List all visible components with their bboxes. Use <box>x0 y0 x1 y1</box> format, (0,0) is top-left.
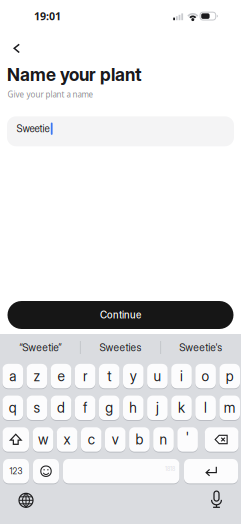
button[interactable]: Sweetie's <box>162 335 240 359</box>
button[interactable]: Dictation <box>203 487 229 513</box>
staticText: s <box>33 399 40 416</box>
button[interactable]: u <box>147 363 168 389</box>
button[interactable]: n <box>153 427 174 452</box>
button[interactable]: a <box>2 363 23 389</box>
staticText: o <box>202 368 210 384</box>
button[interactable]: s <box>27 395 47 420</box>
staticText: f <box>83 399 87 416</box>
button[interactable]: k <box>171 395 192 420</box>
button[interactable]: Continue <box>7 301 233 329</box>
staticText: j <box>156 399 159 416</box>
staticText: 1818 <box>165 466 175 472</box>
staticText: v <box>112 431 119 448</box>
staticText: g <box>105 399 113 416</box>
staticText: Name your plant <box>7 64 142 85</box>
button[interactable]: Shift <box>2 427 29 452</box>
staticText: y <box>130 368 137 384</box>
button[interactable]: t <box>99 363 119 389</box>
staticText: 123 <box>9 466 22 476</box>
button[interactable]: f <box>75 395 95 420</box>
staticText: b <box>135 431 143 448</box>
button[interactable]: e <box>51 363 71 389</box>
button[interactable]: v <box>105 427 126 452</box>
staticText: ' <box>186 429 190 446</box>
staticText: Give your plant a name <box>7 89 93 100</box>
button[interactable]: o <box>195 363 216 389</box>
button[interactable]: Space <box>63 458 179 484</box>
staticText: d <box>57 399 65 416</box>
staticText: p <box>226 368 234 384</box>
button[interactable]: w <box>33 427 53 452</box>
staticText: t <box>107 368 111 384</box>
button[interactable]: ' <box>177 427 198 452</box>
staticText: n <box>159 431 167 448</box>
staticText: “Sweetie” <box>19 341 61 354</box>
staticText: w <box>38 431 48 448</box>
button[interactable]: r <box>75 363 95 389</box>
button[interactable]: g <box>99 395 119 420</box>
button[interactable]: h <box>123 395 144 420</box>
button[interactable]: Sweeties <box>81 335 159 359</box>
button[interactable]: Sweetie <box>7 116 234 146</box>
staticText: u <box>153 368 161 384</box>
staticText: e <box>57 368 64 384</box>
staticText: i <box>180 368 183 384</box>
staticText: r <box>83 368 87 384</box>
button[interactable]: l <box>195 395 216 420</box>
button[interactable]: Next keyboard <box>13 487 39 513</box>
button[interactable]: 123 <box>3 458 29 484</box>
staticText: l <box>204 399 207 416</box>
button[interactable]: p <box>219 363 240 389</box>
button[interactable]: x <box>57 427 77 452</box>
button[interactable]: Delete <box>205 427 238 452</box>
button[interactable]: c <box>81 427 101 452</box>
button[interactable]: y <box>123 363 144 389</box>
button[interactable]: “Sweetie” <box>1 335 79 359</box>
staticText: k <box>178 399 185 416</box>
staticText: h <box>129 399 137 416</box>
button[interactable]: Return <box>184 458 238 484</box>
staticText: 19:01 <box>34 9 61 23</box>
button[interactable]: j <box>147 395 168 420</box>
staticText: q <box>9 399 17 416</box>
button[interactable]: m <box>219 395 240 420</box>
button[interactable]: b <box>129 427 150 452</box>
staticText: m <box>224 399 236 416</box>
staticText: a <box>9 368 16 384</box>
button[interactable]: z <box>27 363 47 389</box>
staticText: Sweetie's <box>179 341 222 354</box>
staticText: c <box>88 431 95 448</box>
button[interactable]: q <box>2 395 23 420</box>
staticText: x <box>64 431 71 448</box>
button[interactable]: d <box>51 395 71 420</box>
button[interactable]: i <box>171 363 192 389</box>
staticText: Sweetie <box>17 123 50 135</box>
staticText: Sweeties <box>99 341 141 354</box>
button[interactable]: Emoji <box>33 458 59 484</box>
staticText: Continue <box>100 309 141 321</box>
staticText: z <box>33 368 40 384</box>
button[interactable]: Back <box>7 36 33 61</box>
